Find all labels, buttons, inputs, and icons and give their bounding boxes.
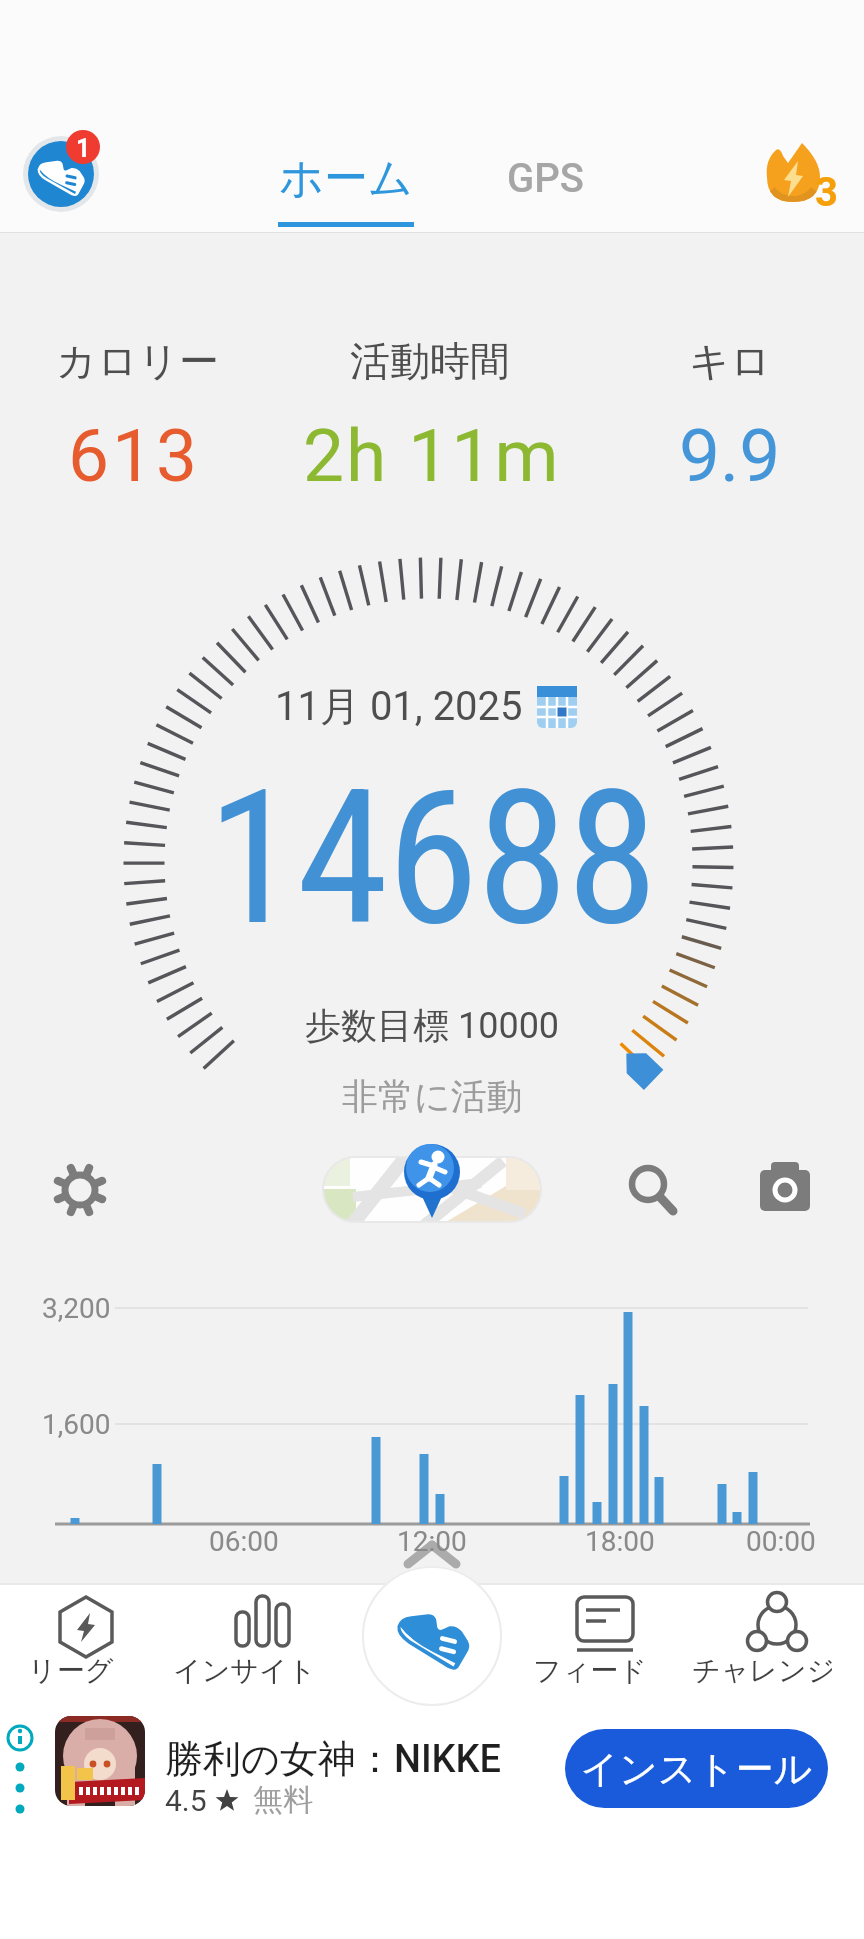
staticText: 3,200	[42, 1292, 111, 1325]
button[interactable]: インストール	[565, 1729, 828, 1808]
staticText: インサイト	[173, 1653, 313, 1688]
button[interactable]: ホーム	[268, 140, 424, 230]
staticText: カロリー	[56, 336, 219, 386]
staticText: 4.5	[165, 1783, 207, 1818]
button[interactable]: チャレンジ	[707, 1590, 847, 1690]
button[interactable]: 勝利の女神：NIKKE	[0, 1695, 864, 1880]
staticText: 9.9	[679, 413, 781, 499]
staticText: 14688	[207, 749, 657, 967]
staticText: 勝利の女神：NIKKE	[165, 1735, 502, 1783]
staticText: 歩数目標 10000	[305, 1003, 560, 1048]
staticText: キロ	[689, 336, 771, 386]
button[interactable]	[40, 1150, 120, 1230]
button[interactable]: インサイト	[188, 1590, 328, 1690]
staticText: インストール	[580, 1745, 813, 1793]
button[interactable]: 3	[758, 130, 848, 220]
button[interactable]	[323, 1140, 541, 1222]
staticText: 2h 11m	[303, 413, 561, 499]
staticText: 18:00	[585, 1525, 655, 1558]
button[interactable]	[372, 1592, 492, 1682]
button[interactable]	[0, 1723, 40, 1863]
staticText: 12:00	[397, 1525, 467, 1558]
staticText: ホーム	[279, 151, 414, 206]
staticText: 11月 01, 2025	[275, 681, 523, 731]
staticText: 活動時間	[350, 336, 510, 386]
staticText: 00:00	[746, 1525, 816, 1558]
button[interactable]: 11月 01, 2025	[226, 672, 626, 740]
staticText: チャレンジ	[692, 1653, 832, 1688]
staticText: 1,600	[42, 1408, 111, 1441]
button[interactable]	[748, 1150, 828, 1230]
staticText: 613	[68, 413, 201, 499]
staticText: 3	[815, 169, 838, 216]
button[interactable]: 1	[18, 131, 104, 217]
staticText: 1	[76, 134, 91, 163]
staticText: GPS	[507, 155, 584, 202]
staticText: リーグ	[28, 1653, 114, 1688]
button[interactable]: フィード	[535, 1590, 675, 1690]
button[interactable]	[612, 1150, 692, 1230]
staticText: フィード	[533, 1653, 647, 1688]
staticText: 無料	[253, 1781, 313, 1819]
staticText: 非常に活動	[342, 1074, 523, 1119]
staticText: 06:00	[209, 1525, 279, 1558]
button[interactable]: リーグ	[16, 1590, 156, 1690]
button[interactable]: GPS	[480, 140, 610, 220]
